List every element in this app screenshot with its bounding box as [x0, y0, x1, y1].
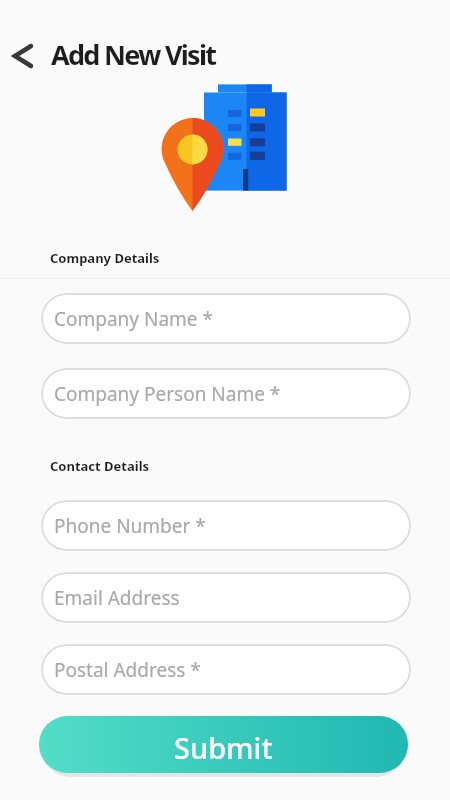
button[interactable]: Email Address: [41, 572, 411, 623]
button[interactable]: [6, 39, 40, 73]
button[interactable]: Phone Number *: [41, 500, 411, 551]
button[interactable]: Postal Address *: [41, 644, 411, 695]
staticText: Submit: [174, 728, 273, 767]
staticText: Company Name *: [54, 306, 213, 332]
staticText: Phone Number *: [54, 513, 206, 539]
staticText: Postal Address *: [54, 657, 201, 683]
staticText: Add New Visit: [51, 36, 216, 73]
button[interactable]: Submit: [39, 716, 408, 773]
staticText: Company Details: [50, 249, 160, 267]
staticText: Contact Details: [50, 457, 150, 475]
staticText: Company Person Name *: [54, 381, 281, 407]
button[interactable]: Company Name *: [41, 293, 411, 344]
button[interactable]: Company Person Name *: [41, 368, 411, 419]
staticText: Email Address: [54, 585, 180, 611]
